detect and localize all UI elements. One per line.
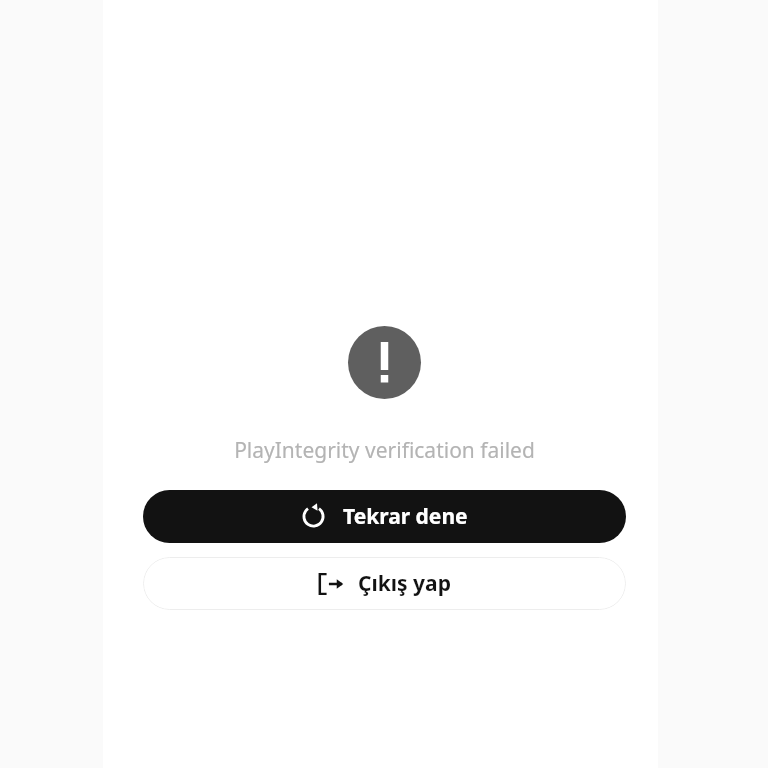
button[interactable]: Çıkış yap [143,557,626,610]
staticText: Tekrar dene [343,502,468,531]
staticText: PlayIntegrity verification failed [234,436,535,465]
staticText: Çıkış yap [358,569,451,598]
button[interactable]: Tekrar dene [143,490,626,543]
